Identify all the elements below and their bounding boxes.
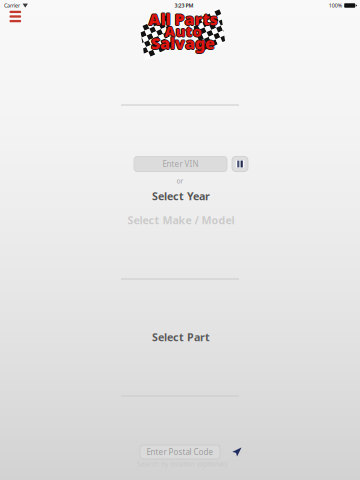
staticText: Salvage bbox=[151, 32, 215, 53]
staticText: Auto bbox=[164, 21, 201, 41]
staticText: 3:23 PM bbox=[174, 2, 193, 9]
staticText: Salvage bbox=[151, 33, 215, 54]
staticText: Auto bbox=[165, 21, 202, 41]
staticText: Auto bbox=[164, 22, 201, 42]
button[interactable]: Enter VIN bbox=[134, 156, 227, 171]
staticText: Auto bbox=[164, 21, 201, 41]
staticText: Select Part bbox=[152, 330, 210, 344]
staticText: Select Year bbox=[152, 189, 210, 203]
staticText: Search by location (optional) bbox=[137, 460, 227, 468]
staticText: Carrier bbox=[4, 2, 20, 9]
staticText: Auto bbox=[164, 20, 201, 40]
staticText: All Parts bbox=[148, 8, 217, 29]
staticText: All Parts bbox=[148, 8, 217, 30]
staticText: Select Make / Model bbox=[127, 213, 234, 227]
staticText: Enter VIN bbox=[162, 159, 198, 169]
staticText: All Parts bbox=[148, 8, 217, 30]
staticText: All Parts bbox=[148, 9, 217, 30]
button[interactable]: Enter Postal Code bbox=[140, 445, 220, 459]
staticText: All Parts bbox=[149, 8, 218, 30]
staticText: Salvage bbox=[152, 32, 216, 54]
button[interactable]: Scan VIN barcode bbox=[232, 156, 248, 171]
staticText: Enter Postal Code bbox=[146, 447, 213, 457]
staticText: or bbox=[176, 177, 183, 185]
staticText: 100% bbox=[329, 2, 342, 9]
button[interactable]: Menu bbox=[9, 11, 21, 22]
staticText: Salvage bbox=[151, 32, 215, 54]
button[interactable]: Use current location bbox=[232, 447, 242, 457]
staticText: Salvage bbox=[150, 32, 214, 54]
